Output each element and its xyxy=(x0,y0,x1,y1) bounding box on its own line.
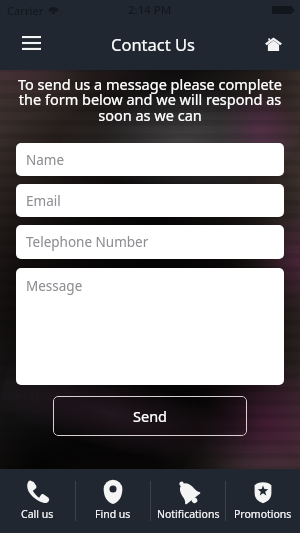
staticText: Promotions xyxy=(234,507,292,521)
staticText: Notifications xyxy=(157,507,220,521)
staticText: Name xyxy=(26,151,65,169)
staticText: Send xyxy=(133,406,168,426)
button[interactable]: Call us xyxy=(0,469,75,533)
staticText: Find us xyxy=(95,507,131,521)
staticText: 2:14 PM xyxy=(128,2,172,18)
staticText: To send us a message please complete the… xyxy=(16,74,284,125)
button[interactable]: Telephone Number xyxy=(16,225,284,259)
button[interactable]: Notifications xyxy=(151,469,225,533)
staticText: Message xyxy=(26,277,83,295)
button[interactable]: Send xyxy=(53,396,247,436)
button[interactable]: Home xyxy=(254,24,292,62)
staticText: Call us xyxy=(21,507,54,521)
button[interactable]: Message xyxy=(16,268,284,385)
staticText: Contact Us xyxy=(111,33,195,55)
button[interactable]: Menu xyxy=(12,24,50,62)
staticText: Email xyxy=(26,192,61,210)
button[interactable]: Find us xyxy=(76,469,150,533)
staticText: Carrier xyxy=(7,3,44,18)
staticText: Telephone Number xyxy=(26,233,149,251)
button[interactable]: Promotions xyxy=(226,469,300,533)
button[interactable]: Name xyxy=(16,143,284,176)
button[interactable]: Email xyxy=(16,184,284,217)
